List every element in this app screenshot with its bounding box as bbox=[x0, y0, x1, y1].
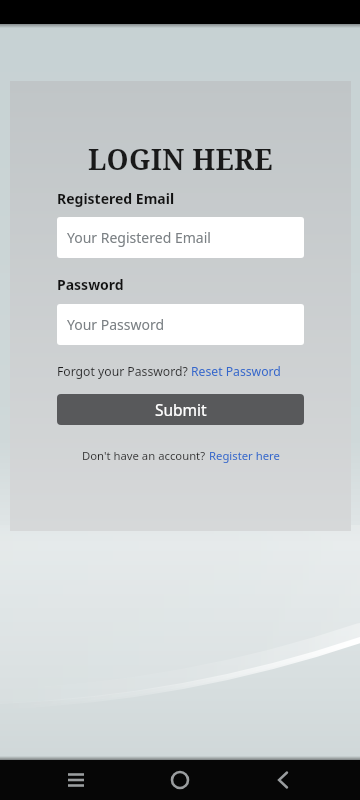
button[interactable]: Register here bbox=[209, 448, 280, 463]
button[interactable] bbox=[58, 764, 94, 796]
button[interactable]: Reset Password bbox=[191, 363, 281, 380]
button[interactable]: Your Password bbox=[57, 304, 304, 345]
button[interactable] bbox=[265, 764, 301, 796]
staticText: Password bbox=[57, 275, 124, 294]
staticText: Don't have an account? bbox=[82, 448, 209, 463]
staticText: Registered Email bbox=[57, 189, 175, 208]
button[interactable]: Submit bbox=[57, 394, 304, 425]
button[interactable] bbox=[162, 764, 198, 796]
staticText: Your Password bbox=[67, 315, 165, 334]
staticText: Forgot your Password? bbox=[57, 363, 191, 380]
button[interactable]: Your Registered Email bbox=[57, 217, 304, 258]
staticText: Your Registered Email bbox=[67, 228, 211, 247]
staticText: LOGIN HERE bbox=[88, 140, 273, 178]
staticText: Submit bbox=[155, 399, 207, 420]
